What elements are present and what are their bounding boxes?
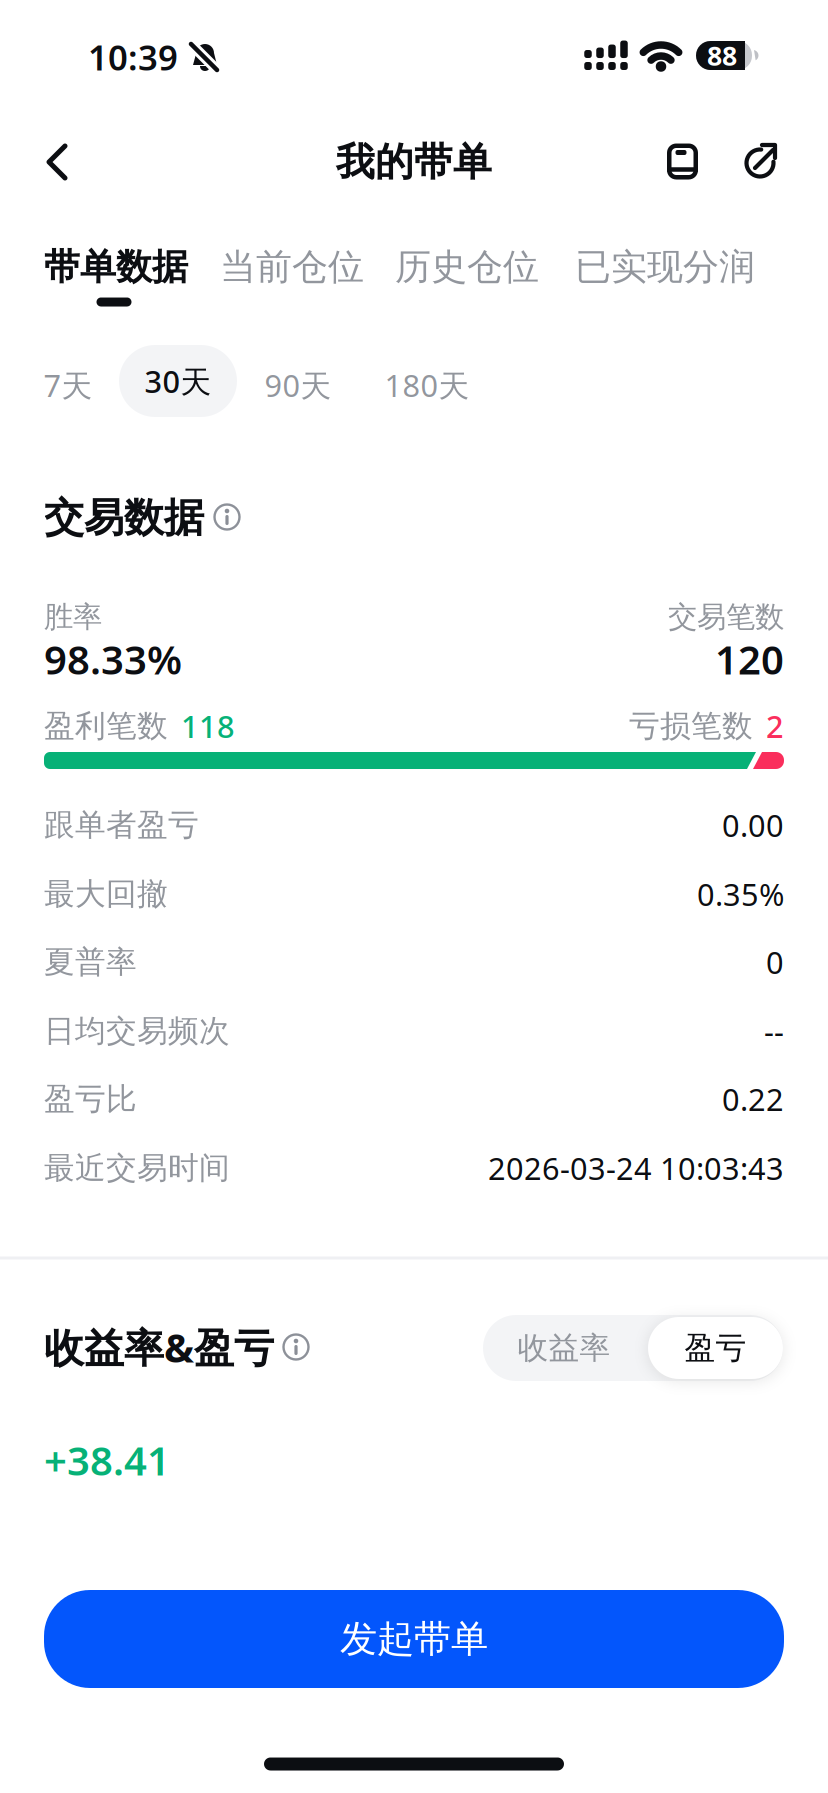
staticText: 180天 (384, 365, 469, 405)
staticText: 98.33% (44, 632, 182, 685)
staticText: 0.22 (722, 1079, 784, 1119)
staticText: 2026-03-24 10:03:43 (488, 1148, 784, 1188)
staticText: 当前仓位 (220, 245, 364, 289)
button[interactable]: 盈亏 (648, 1317, 783, 1379)
button[interactable]: 历史仓位 (395, 245, 539, 289)
staticText: 胜率 (44, 599, 102, 635)
staticText: 2 (766, 706, 784, 746)
staticText: -- (764, 1011, 784, 1051)
button[interactable]: Share (0, 0, 828, 1793)
staticText: 0 (766, 942, 784, 982)
staticText: 历史仓位 (395, 245, 539, 289)
button[interactable]: 带单数据 (44, 245, 188, 289)
staticText: 118 (181, 706, 235, 746)
staticText: +38.41 (44, 1433, 170, 1486)
staticText: 盈利笔数 (44, 707, 168, 745)
staticText: 收益率&盈亏 (44, 1320, 274, 1373)
staticText: 0.35% (697, 874, 784, 914)
staticText: 最大回撤 (44, 875, 168, 913)
button[interactable]: 收益率 (484, 1315, 644, 1381)
button[interactable]: 90天 (264, 365, 331, 405)
staticText: 亏损笔数 (629, 707, 753, 745)
staticText: 盈亏比 (44, 1080, 137, 1118)
staticText: 7天 (43, 365, 92, 405)
staticText: 0.00 (722, 805, 784, 845)
staticText: 收益率 (517, 1329, 610, 1367)
button[interactable]: 当前仓位 (220, 245, 364, 289)
staticText: 10:39 (88, 34, 178, 80)
staticText: 已实现分润 (575, 245, 755, 289)
staticText: 30天 (144, 361, 211, 401)
staticText: 交易数据 (44, 493, 204, 542)
staticText: 发起带单 (340, 1616, 488, 1662)
staticText: 日均交易频次 (44, 1012, 230, 1050)
button[interactable]: 已实现分润 (575, 245, 755, 289)
button[interactable]: Orders history (0, 0, 828, 1793)
staticText: 90天 (264, 365, 331, 405)
button[interactable]: 发起带单 (44, 1590, 784, 1688)
staticText: 夏普率 (44, 943, 137, 981)
staticText: 交易笔数 (668, 599, 784, 635)
staticText: 120 (715, 632, 784, 685)
staticText: 我的带单 (336, 138, 492, 186)
button[interactable]: 7天 (43, 365, 92, 405)
staticText: 带单数据 (44, 245, 188, 289)
staticText: 跟单者盈亏 (44, 806, 199, 844)
button[interactable]: Back (27, 132, 87, 192)
button[interactable]: About trade data (0, 0, 828, 1793)
button[interactable]: About returns (0, 0, 828, 1793)
button[interactable]: 180天 (384, 365, 469, 405)
staticText: 盈亏 (684, 1329, 746, 1367)
button[interactable]: 30天 (119, 345, 237, 417)
staticText: 88 (707, 38, 737, 73)
staticText: 最近交易时间 (44, 1149, 230, 1187)
